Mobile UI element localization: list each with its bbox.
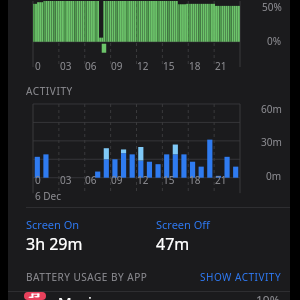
staticText: 19% xyxy=(256,292,280,300)
staticText: 12 xyxy=(137,173,149,187)
staticText: 12 xyxy=(137,59,149,73)
staticText: 03 xyxy=(60,59,72,73)
staticText: 18 xyxy=(189,173,201,187)
staticText: Music xyxy=(58,292,100,300)
staticText: Screen Off xyxy=(156,217,210,232)
staticText: 15 xyxy=(163,173,175,187)
other: Music app icon xyxy=(24,292,46,300)
staticText: 18 xyxy=(189,59,201,73)
staticText: 06 xyxy=(85,173,97,187)
staticText: Screen On xyxy=(26,217,80,232)
staticText: 0% xyxy=(267,34,282,48)
button[interactable]: SHOW ACTIVITY xyxy=(200,270,282,284)
staticText: 0 xyxy=(35,59,41,73)
staticText: BATTERY USAGE BY APP xyxy=(26,270,148,284)
staticText: 03 xyxy=(60,173,72,187)
staticText: 21 xyxy=(215,59,227,73)
staticText: 0m xyxy=(266,169,282,183)
staticText: 21 xyxy=(215,173,227,187)
button[interactable]: Screen Off xyxy=(156,217,210,255)
staticText: 3h 29m xyxy=(26,233,83,255)
staticText: 0 xyxy=(35,173,41,187)
button[interactable]: Music app icon xyxy=(8,292,290,300)
staticText: 30m xyxy=(261,135,282,149)
staticText: 50% xyxy=(262,0,282,14)
staticText: 09 xyxy=(111,59,123,73)
staticText: 15 xyxy=(163,59,175,73)
staticText: ACTIVITY xyxy=(26,84,73,98)
staticText: 09 xyxy=(111,173,123,187)
button[interactable]: Screen On xyxy=(26,217,156,255)
staticText: SHOW ACTIVITY xyxy=(200,270,282,284)
staticText: 6 Dec xyxy=(35,189,62,203)
staticText: 06 xyxy=(85,59,97,73)
staticText: 60m xyxy=(261,102,282,116)
staticText: 47m xyxy=(156,233,190,255)
